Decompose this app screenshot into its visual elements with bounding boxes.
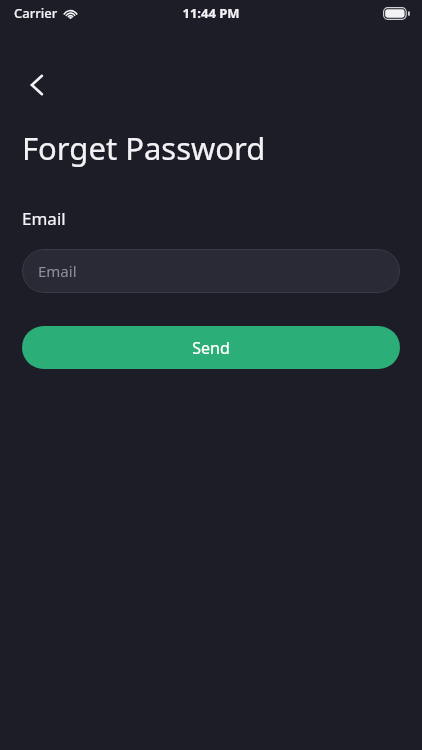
staticText: Send bbox=[192, 337, 230, 359]
staticText: Email bbox=[38, 261, 77, 281]
staticText: Carrier bbox=[14, 4, 58, 22]
staticText: 11:44 PM bbox=[182, 4, 240, 22]
staticText: Email bbox=[22, 207, 66, 230]
button[interactable]: Email bbox=[22, 249, 400, 293]
staticText: Forget Password bbox=[22, 127, 266, 169]
button[interactable]: Send bbox=[22, 326, 400, 369]
button[interactable]: Back bbox=[16, 63, 60, 107]
